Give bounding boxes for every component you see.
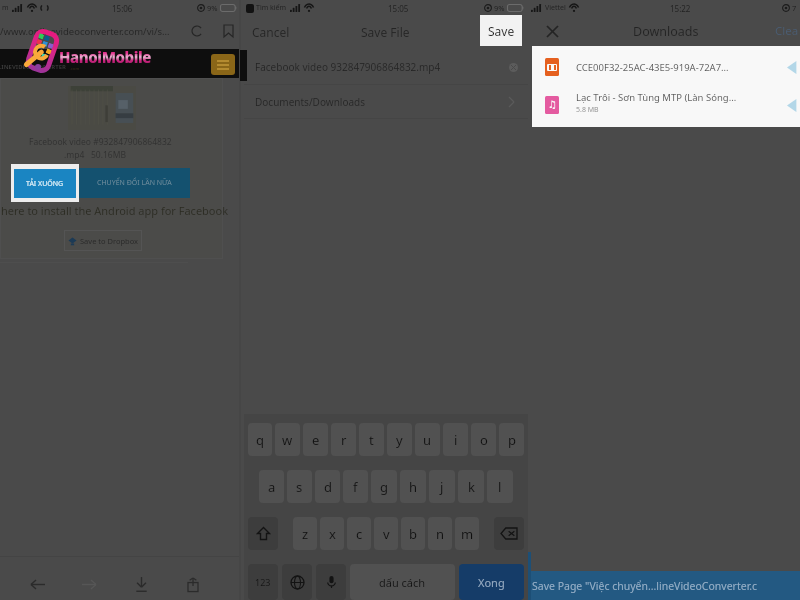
button[interactable]: d <box>315 470 340 503</box>
button[interactable]: Back <box>27 574 47 594</box>
button[interactable]: s <box>287 470 312 503</box>
button[interactable]: Save <box>480 15 522 46</box>
button[interactable]: Downloads <box>131 574 151 594</box>
button[interactable]: a <box>259 470 284 503</box>
button[interactable]: u <box>415 423 440 456</box>
button[interactable]: o <box>471 423 496 456</box>
button[interactable]: y <box>387 423 412 456</box>
staticText: 9% <box>494 3 505 13</box>
staticText: i <box>454 431 458 449</box>
staticText: Documents/Downloads <box>255 95 365 109</box>
staticText: k <box>468 478 475 496</box>
button[interactable]: Dictate <box>316 564 346 600</box>
staticText: 5.8 MB <box>576 105 599 115</box>
button[interactable]: Backspace <box>494 517 524 550</box>
staticText: Viettel <box>545 3 566 13</box>
button[interactable]: Cancel <box>252 24 290 40</box>
button[interactable]: Documents/Downloads <box>244 85 528 118</box>
button[interactable]: Save to Dropbox <box>64 230 142 251</box>
button[interactable]: v <box>374 517 398 550</box>
staticText: CCE00F32-25AC-43E5-919A-72A7… <box>576 61 729 74</box>
staticText: v <box>383 525 390 543</box>
button[interactable]: Bookmarks <box>219 22 237 40</box>
button[interactable]: 123 <box>248 564 278 600</box>
button[interactable]: k <box>458 470 484 503</box>
button[interactable]: c <box>347 517 371 550</box>
staticText: m <box>461 525 474 543</box>
button[interactable]: ♫ <box>545 86 800 124</box>
button[interactable]: r <box>331 423 356 456</box>
button[interactable]: Reload <box>189 23 205 39</box>
staticText: n <box>436 525 445 543</box>
button[interactable]: f <box>343 470 368 503</box>
button[interactable]: h <box>400 470 426 503</box>
staticText: c <box>356 525 363 543</box>
button[interactable]: CCE00F32-25AC-43E5-919A-72A7… <box>545 48 800 86</box>
button[interactable]: l <box>487 470 513 503</box>
button[interactable]: b <box>401 517 425 550</box>
staticText: Facebook video #932847906864832 <box>29 136 172 148</box>
button[interactable]: x <box>320 517 344 550</box>
staticText: r <box>341 431 347 449</box>
button[interactable]: n <box>428 517 452 550</box>
staticText: Downloads <box>633 23 699 40</box>
staticText: 9% <box>207 3 218 13</box>
staticText: HanoiMobile <box>59 47 151 67</box>
staticText: x <box>329 525 336 543</box>
button[interactable]: z <box>293 517 317 550</box>
button[interactable]: w <box>275 423 300 456</box>
button[interactable]: i <box>443 423 468 456</box>
staticText: p <box>508 431 516 449</box>
staticText: 15:05 <box>388 3 409 14</box>
staticText: u <box>423 431 432 449</box>
button[interactable]: t <box>359 423 384 456</box>
button[interactable]: q <box>248 423 272 456</box>
staticText: /www.onlinevideoconverter.com/vi/s… <box>0 25 170 38</box>
button[interactable]: j <box>429 470 455 503</box>
button[interactable]: Clea <box>775 23 799 39</box>
button[interactable]: Open file <box>784 59 800 75</box>
button[interactable]: Facebook video 932847906864832.mp4 <box>244 50 528 84</box>
button[interactable]: e <box>303 423 328 456</box>
button[interactable]: Close <box>542 21 562 41</box>
staticText: 7 <box>792 3 797 13</box>
staticText: ♫ <box>548 99 557 111</box>
staticText: Clea <box>775 23 799 39</box>
button[interactable]: Menu <box>211 54 235 75</box>
staticText: s <box>296 478 303 496</box>
staticText: LINEVIDEOCONVERTER <box>0 63 66 71</box>
button[interactable]: Open file <box>784 97 800 113</box>
staticText: .com <box>70 66 80 71</box>
button[interactable]: CHUYỂN ĐỔI LẦN NỮA <box>79 168 190 198</box>
staticText: Save Page "Việc chuyển…lineVideoConverte… <box>532 579 758 593</box>
staticText: 123 <box>255 576 271 588</box>
staticText: Save <box>488 23 515 39</box>
button[interactable]: p <box>499 423 524 456</box>
button[interactable]: Share <box>183 574 203 594</box>
staticText: 15:22 <box>670 3 691 14</box>
staticText: here to install the Android app for Face… <box>1 203 229 218</box>
button[interactable]: Xong <box>459 564 524 600</box>
staticText: f <box>353 478 358 496</box>
staticText: dấu cách <box>379 575 426 590</box>
staticText: o <box>480 431 488 449</box>
staticText: m <box>2 3 9 13</box>
button[interactable]: g <box>371 470 397 503</box>
staticText: h <box>409 478 418 496</box>
button[interactable]: m <box>455 517 479 550</box>
button[interactable]: Shift <box>248 517 278 550</box>
staticText: e <box>312 431 320 449</box>
button[interactable]: dấu cách <box>350 564 455 600</box>
staticText: Save File <box>361 24 410 40</box>
staticText: z <box>302 525 309 543</box>
staticText: Xong <box>478 575 505 590</box>
button[interactable]: Change keyboard <box>282 564 312 600</box>
staticText: g <box>380 478 388 496</box>
staticText: a <box>268 478 276 496</box>
staticText: TẢI XUỐNG <box>26 179 64 189</box>
button[interactable]: TẢI XUỐNG <box>11 164 79 202</box>
staticText: Lạc Trôi - Sơn Tùng MTP (Làn Sóng… <box>576 91 737 104</box>
staticText: Tìm kiếm <box>256 3 287 13</box>
staticText: y <box>396 431 403 449</box>
